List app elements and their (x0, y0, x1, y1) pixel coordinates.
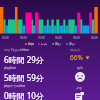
staticText: 00:00 (20, 36, 27, 40)
staticText: 睡眠時間 (4, 66, 16, 70)
staticText: 66% (70, 53, 83, 62)
button[interactable]: 気分 (75, 66, 85, 82)
button[interactable]: 睡眠までの時間 (4, 84, 100, 100)
staticText: 03:00 (73, 36, 80, 40)
staticText: レム (41, 42, 48, 46)
staticText: 6時間 29分 (4, 54, 44, 65)
staticText: 気分 (77, 66, 83, 70)
staticText: 浅い (55, 42, 62, 46)
staticText: 睡眠までの時間 (4, 84, 26, 88)
staticText: ベッドにいる時間 (4, 48, 29, 52)
button[interactable]: 深い (66, 42, 76, 46)
staticText: 深い (69, 42, 76, 46)
staticText: 0時間 10分 (4, 90, 44, 100)
button[interactable]: 睡眠時間 (4, 66, 100, 84)
button[interactable]: レム (38, 42, 48, 46)
staticText: メモ (76, 86, 83, 90)
staticText: 04:00 (91, 36, 98, 40)
button[interactable]: 睡眠効率 (70, 48, 90, 62)
staticText: 01:00 (38, 36, 45, 40)
button[interactable]: メモ (75, 86, 84, 100)
button[interactable]: 浅い (52, 42, 62, 46)
staticText: 23:00 (2, 36, 9, 40)
button[interactable]: ベッドにいる時間 (4, 48, 100, 66)
staticText: 睡眠効率 (70, 48, 81, 51)
staticText: 02:00 (55, 36, 62, 40)
button[interactable]: 覚醒 (25, 42, 34, 46)
staticText: 覚醒 (28, 42, 34, 46)
staticText: 5時間 59分 (4, 72, 44, 83)
